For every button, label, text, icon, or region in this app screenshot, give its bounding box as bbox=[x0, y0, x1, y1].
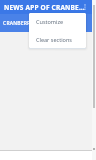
staticText: Customize Sections bbox=[36, 18, 86, 25]
button[interactable]: Customize Sections bbox=[29, 13, 86, 30]
button[interactable]: CRANBERRY bbox=[3, 20, 34, 27]
staticText: CRANBERRY bbox=[3, 20, 34, 27]
staticText: NEWS APP OF CRANBE… bbox=[4, 3, 85, 12]
button[interactable]: More options bbox=[80, 2, 90, 12]
button[interactable]: Clear sections bbox=[29, 30, 86, 48]
staticText: Clear sections bbox=[36, 36, 72, 43]
